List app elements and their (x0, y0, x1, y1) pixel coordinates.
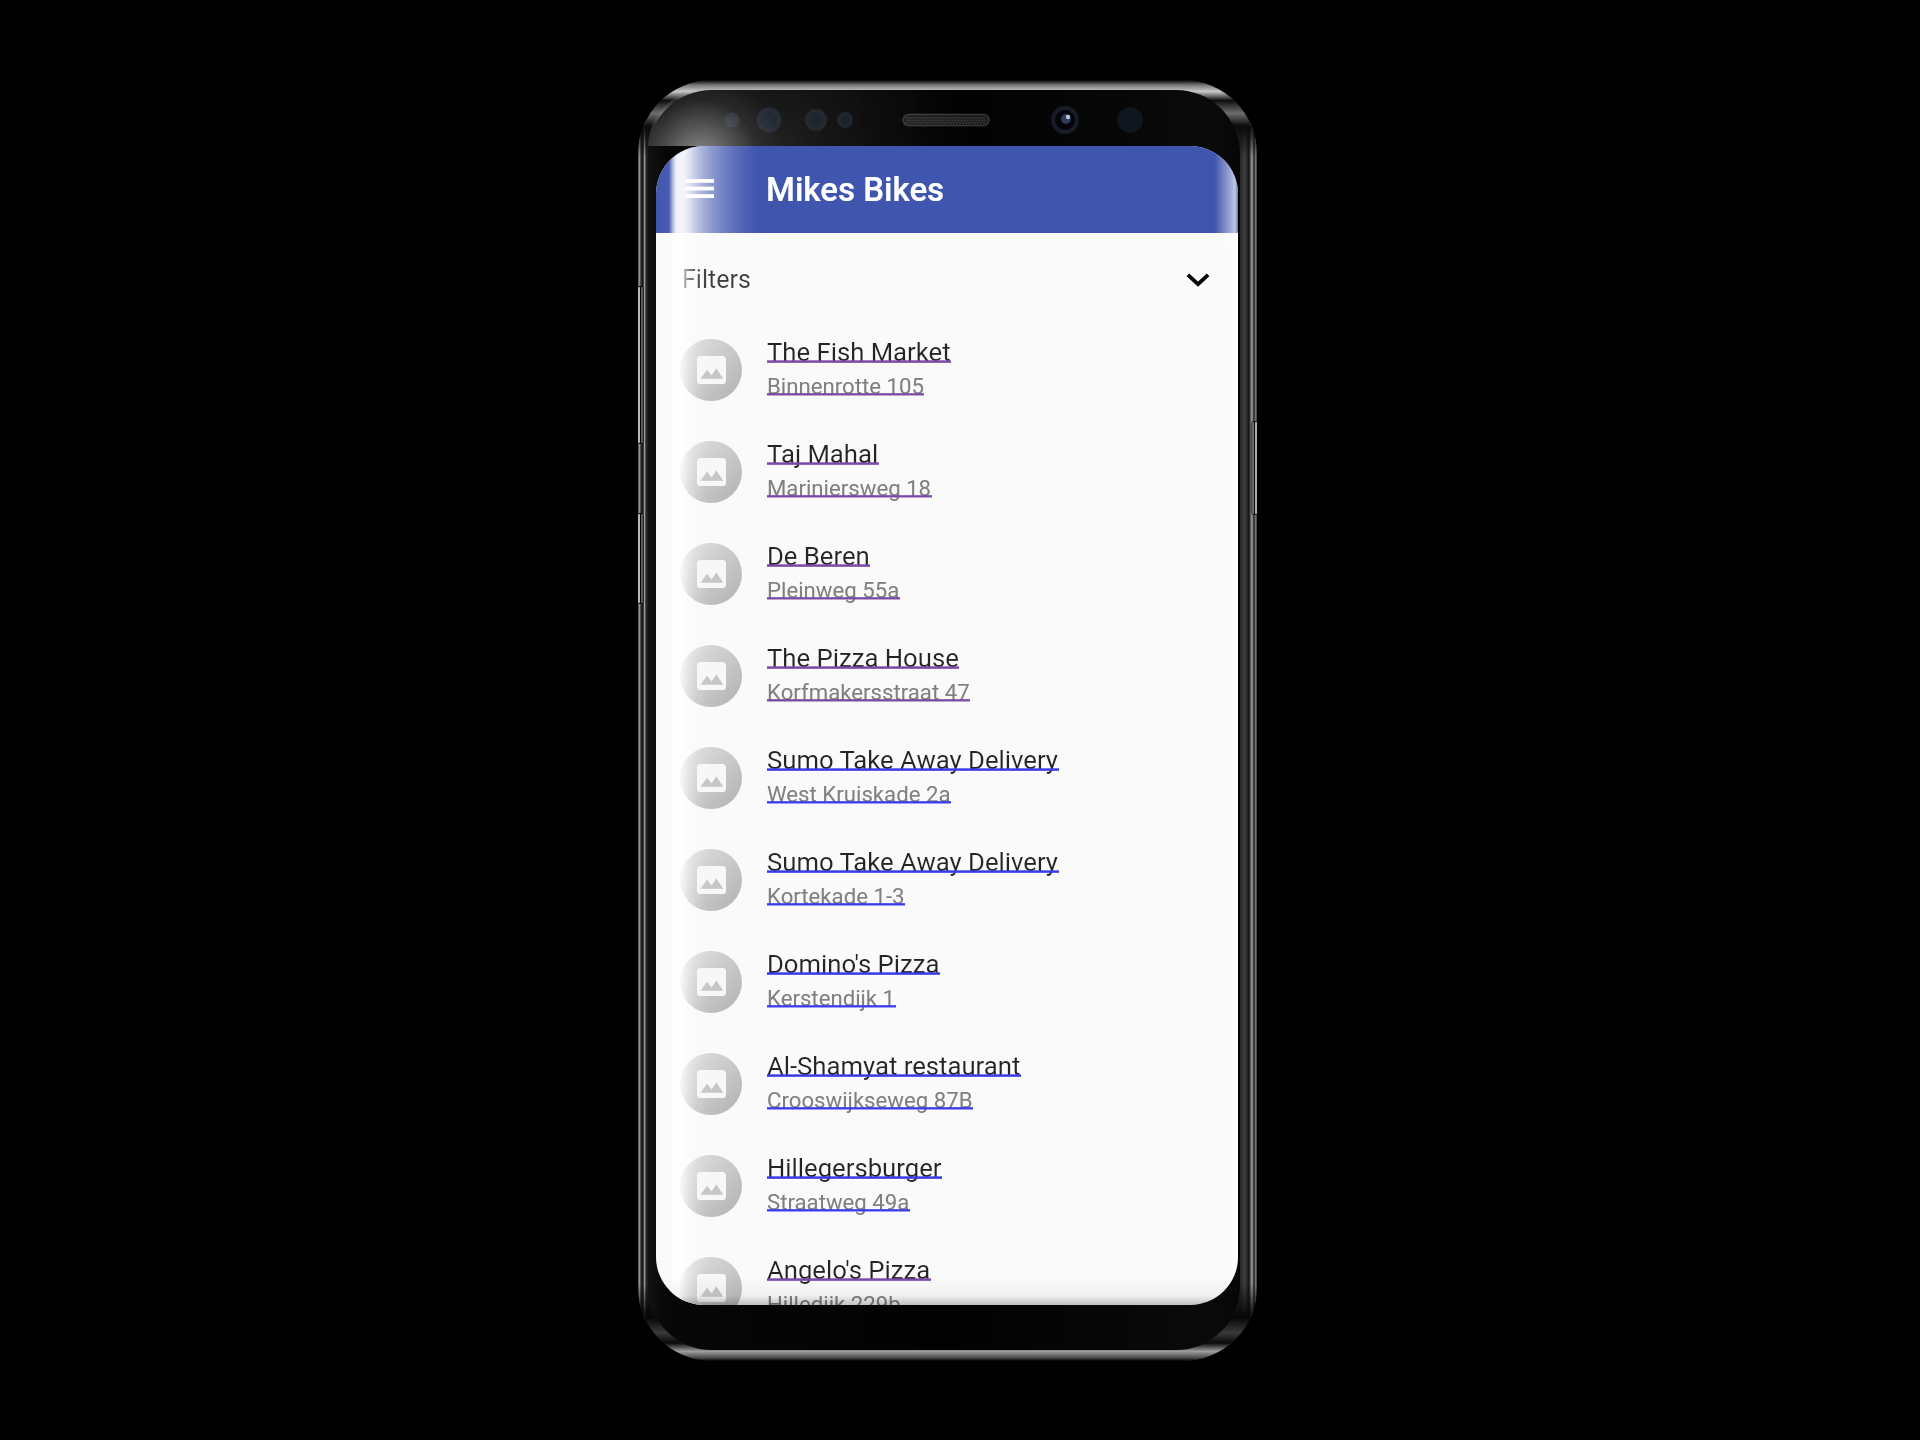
button[interactable]: Angelo's Pizza (656, 1237, 1238, 1305)
button[interactable]: Al-Shamyat restaurant (656, 1033, 1238, 1135)
staticText: West Kruiskade 2a (767, 781, 951, 807)
staticText: Crooswijkseweg 87B (767, 1087, 973, 1113)
staticText: Pleinweg 55a (767, 577, 900, 603)
button[interactable]: Taj Mahal (656, 421, 1238, 523)
staticText: Sumo Take Away Delivery (767, 847, 1059, 877)
staticText: The Pizza House (767, 643, 959, 673)
button[interactable]: Sumo Take Away Delivery (656, 829, 1238, 931)
button[interactable]: Filters (656, 234, 1238, 324)
staticText: The Fish Market (767, 337, 951, 367)
button[interactable]: De Beren (656, 523, 1238, 625)
staticText: Binnenrotte 105 (767, 373, 924, 399)
staticText: Hillediik 229b (767, 1291, 901, 1305)
staticText: Angelo's Pizza (767, 1255, 931, 1285)
button[interactable]: Open navigation menu (670, 161, 728, 219)
staticText: Mikes Bikes (766, 170, 945, 209)
button[interactable]: The Pizza House (656, 625, 1238, 727)
button[interactable]: Hillegersburger (656, 1135, 1238, 1237)
staticText: Domino's Pizza (767, 949, 940, 979)
staticText: Taj Mahal (767, 439, 879, 469)
staticText: Mariniersweg 18 (767, 475, 932, 501)
staticText: Hillegersburger (767, 1153, 942, 1183)
button[interactable]: Sumo Take Away Delivery (656, 727, 1238, 829)
staticText: Al-Shamyat restaurant (767, 1051, 1021, 1081)
staticText: De Beren (767, 541, 870, 571)
other: Expand filters (1172, 253, 1224, 305)
staticText: Straatweg 49a (767, 1189, 910, 1215)
staticText: Kortekade 1-3 (767, 883, 905, 909)
staticText: Kerstendijk 1 (767, 985, 896, 1011)
staticText: Sumo Take Away Delivery (767, 745, 1059, 775)
staticText: Filters (682, 265, 751, 294)
button[interactable]: Domino's Pizza (656, 931, 1238, 1033)
button[interactable]: The Fish Market (656, 319, 1238, 421)
staticText: Korfmakersstraat 47 (767, 679, 970, 705)
